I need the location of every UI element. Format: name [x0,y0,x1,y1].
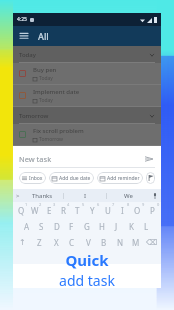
staticText: 6 [97,202,100,207]
button[interactable]: Add due date [49,172,94,184]
staticText: Today [39,75,53,82]
staticText: 5 [82,202,85,207]
button[interactable]: O [130,202,145,218]
staticText: New task [19,154,52,164]
staticText: O [134,205,141,216]
staticText: Z [37,237,42,248]
staticText: S [39,221,44,232]
staticText: 3 [53,202,56,207]
staticText: M [132,237,140,248]
button[interactable]: S [34,218,49,234]
staticText: F [69,221,74,232]
button[interactable]: Implement date [13,85,161,106]
button[interactable]: A [20,218,34,234]
button[interactable]: E [42,202,56,218]
button[interactable]: We [107,189,149,202]
button[interactable]: Y [85,202,100,218]
button[interactable]: C [64,234,80,250]
button[interactable]: Tomorrow [13,107,161,124]
staticText: 7 [112,202,115,207]
staticText: Add reminder [107,175,140,182]
button[interactable]: Q [14,202,28,218]
staticText: ↑ [19,238,26,247]
staticText: Implement date [33,88,80,96]
staticText: X [54,237,59,248]
staticText: E [47,205,52,216]
staticText: J [115,221,118,232]
staticText: U [105,205,111,216]
staticText: G [84,221,90,232]
button[interactable]: X [48,234,64,250]
staticText: Tomorrow [19,112,49,120]
staticText: T [75,205,80,216]
staticText: Quick [65,250,109,270]
staticText: Thanks [32,192,53,200]
staticText: Buy pen [33,66,57,74]
staticText: D [54,221,60,232]
button[interactable]: Fix scroll problem [13,124,161,145]
staticText: Y [90,205,95,216]
button[interactable]: Today [13,46,161,63]
staticText: 8 [127,202,130,207]
staticText: C [69,237,75,248]
button[interactable]: I [115,202,130,218]
button[interactable]: J [109,218,124,234]
button[interactable]: V [80,234,96,250]
button[interactable]: R [56,202,70,218]
button[interactable]: U [100,202,115,218]
staticText: 0 [157,202,160,207]
button[interactable]: ⌫ [144,234,160,250]
button[interactable]: Inbox [19,172,46,184]
staticText: 4 [67,202,70,207]
staticText: R [61,205,66,216]
staticText: 4:25 [17,16,27,23]
button[interactable]: W [28,202,42,218]
staticText: W [31,205,39,216]
staticText: We [124,192,133,200]
staticText: A [24,221,30,232]
button[interactable]: G [79,218,94,234]
staticText: All [38,30,49,42]
button[interactable]: H [94,218,109,234]
button[interactable]: I [64,189,106,202]
button[interactable]: D [49,218,64,234]
button[interactable]: B [96,234,112,250]
staticText: I [121,205,124,216]
staticText: Today [19,51,36,59]
button[interactable]: Buy pen [13,63,161,84]
staticText: B [101,237,107,248]
staticText: Today [39,97,53,104]
button[interactable]: ↑ [14,234,31,250]
staticText: K [129,221,134,232]
button[interactable]: Set priority [146,172,155,184]
staticText: Fix scroll problem [33,127,84,135]
button[interactable]: L [139,218,154,234]
button[interactable]: T [70,202,85,218]
button[interactable]: N [112,234,128,250]
button[interactable]: Voice input [149,189,161,202]
staticText: L [144,221,149,232]
staticText: Add due date [59,175,91,182]
staticText: > [16,192,20,200]
staticText: ⌫ [146,238,158,247]
staticText: P [150,205,155,216]
staticText: Inbox [29,175,43,182]
staticText: 2 [39,202,42,207]
staticText: I [84,192,87,200]
staticText: N [117,237,124,248]
button[interactable]: M [128,234,144,250]
button[interactable]: New task [19,151,155,167]
staticText: Tomorrow [39,136,64,143]
staticText: add task [59,271,115,290]
button[interactable]: P [145,202,160,218]
button[interactable]: F [64,218,79,234]
button[interactable]: Add reminder [97,172,143,184]
button[interactable]: Open navigation menu [18,30,30,42]
staticText: 1 [25,202,28,207]
button[interactable]: Thanks [22,189,63,202]
button[interactable]: Send task [143,153,155,165]
button[interactable]: K [124,218,139,234]
staticText: 9 [142,202,145,207]
staticText: H [99,221,105,232]
button[interactable]: Z [31,234,48,250]
